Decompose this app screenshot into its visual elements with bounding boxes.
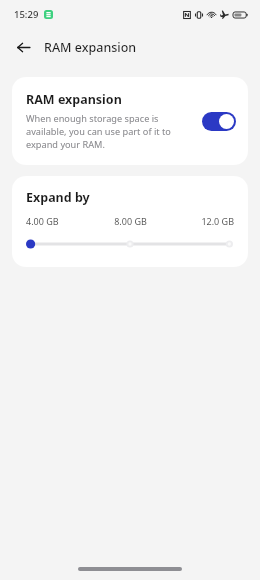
staticText: When enough storage space is available, … <box>26 112 194 151</box>
staticText: 12.0 GB <box>165 215 234 227</box>
staticText: RAM expansion <box>26 91 122 108</box>
staticText: Expand by <box>26 189 90 206</box>
button[interactable]: RAM expansion <box>12 77 248 165</box>
button[interactable] <box>26 237 234 251</box>
staticText: 4.00 GB <box>26 215 96 227</box>
button[interactable]: Back <box>8 32 38 62</box>
staticText: 15:29 <box>14 8 39 21</box>
staticText: RAM expansion <box>44 39 137 56</box>
button[interactable]: RAM expansion toggle <box>202 112 236 131</box>
staticText: 8.00 GB <box>96 215 165 227</box>
